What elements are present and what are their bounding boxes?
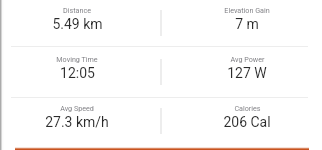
staticText: Elevation Gain: [224, 6, 270, 14]
staticText: Moving Time: [56, 55, 98, 63]
staticText: Distance: [63, 6, 91, 14]
button[interactable]: Avg Power: [162, 43, 322, 92]
staticText: 206 Cal: [223, 114, 271, 130]
staticText: 5.49 km: [52, 16, 103, 32]
button[interactable]: Avg Speed: [0, 92, 162, 141]
staticText: 12:05: [60, 65, 95, 81]
button[interactable]: Elevation Gain: [162, 0, 322, 43]
staticText: Calories: [234, 104, 261, 112]
staticText: 27.3 km/h: [45, 114, 109, 130]
staticText: 7 m: [235, 16, 259, 32]
button[interactable]: Distance: [0, 0, 162, 43]
staticText: Avg Power: [230, 55, 265, 63]
staticText: Avg Speed: [60, 104, 94, 112]
staticText: 127 W: [227, 65, 267, 81]
button[interactable]: Moving Time: [0, 43, 162, 92]
button[interactable]: Calories: [162, 92, 322, 141]
